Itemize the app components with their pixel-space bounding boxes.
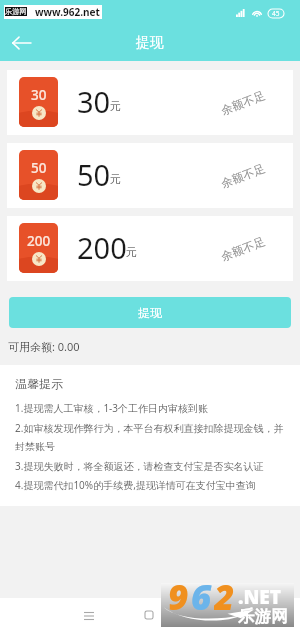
staticText: 30 <box>31 86 47 104</box>
staticText: 元 <box>110 99 121 113</box>
staticText: 封禁账号 <box>15 440 55 453</box>
staticText: .NET <box>238 584 281 610</box>
button[interactable]: 200 <box>7 216 293 281</box>
button[interactable]: 提现 <box>9 297 291 328</box>
staticText: 2.如审核发现作弊行为，本平台有权利直接扣除提现金钱，并 <box>15 421 284 435</box>
staticText: 30 <box>77 82 111 121</box>
staticText: 温馨提示 <box>15 376 63 391</box>
staticText: 元 <box>110 172 121 186</box>
staticText: 提现 <box>136 34 164 52</box>
staticText: 1.提现需人工审核，1-3个工作日内审核到账 <box>15 401 209 415</box>
staticText: 50 <box>31 159 47 177</box>
staticText: 乐游网 <box>238 606 288 627</box>
staticText: 2 <box>214 573 237 617</box>
staticText: 余额不足 <box>219 161 267 191</box>
staticText: 元 <box>126 245 137 259</box>
staticText: 50 <box>77 155 111 194</box>
staticText: www.962.net <box>35 5 100 19</box>
staticText: 提现 <box>138 305 162 320</box>
staticText: 4.提现需代扣10%的手续费,提现详情可在支付宝中查询 <box>15 478 256 492</box>
staticText: 余额不足 <box>219 88 267 118</box>
staticText: 200 <box>77 228 127 267</box>
button[interactable]: 30 <box>7 70 293 135</box>
staticText: 9 <box>168 573 191 617</box>
staticText: 可用余额: 0.00 <box>8 339 80 354</box>
staticText: 余额不足 <box>219 234 267 264</box>
staticText: 45 <box>272 9 280 18</box>
button[interactable]: Back <box>6 28 36 58</box>
button[interactable]: 50 <box>7 143 293 208</box>
staticText: 3.提现失败时，将全额返还，请检查支付宝是否实名认证 <box>15 459 264 473</box>
staticText: 乐游网 <box>5 7 27 16</box>
button[interactable]: Menu <box>79 606 98 625</box>
button[interactable]: Recents <box>139 605 158 624</box>
staticText: 200 <box>27 232 51 250</box>
staticText: 6 <box>191 573 214 617</box>
